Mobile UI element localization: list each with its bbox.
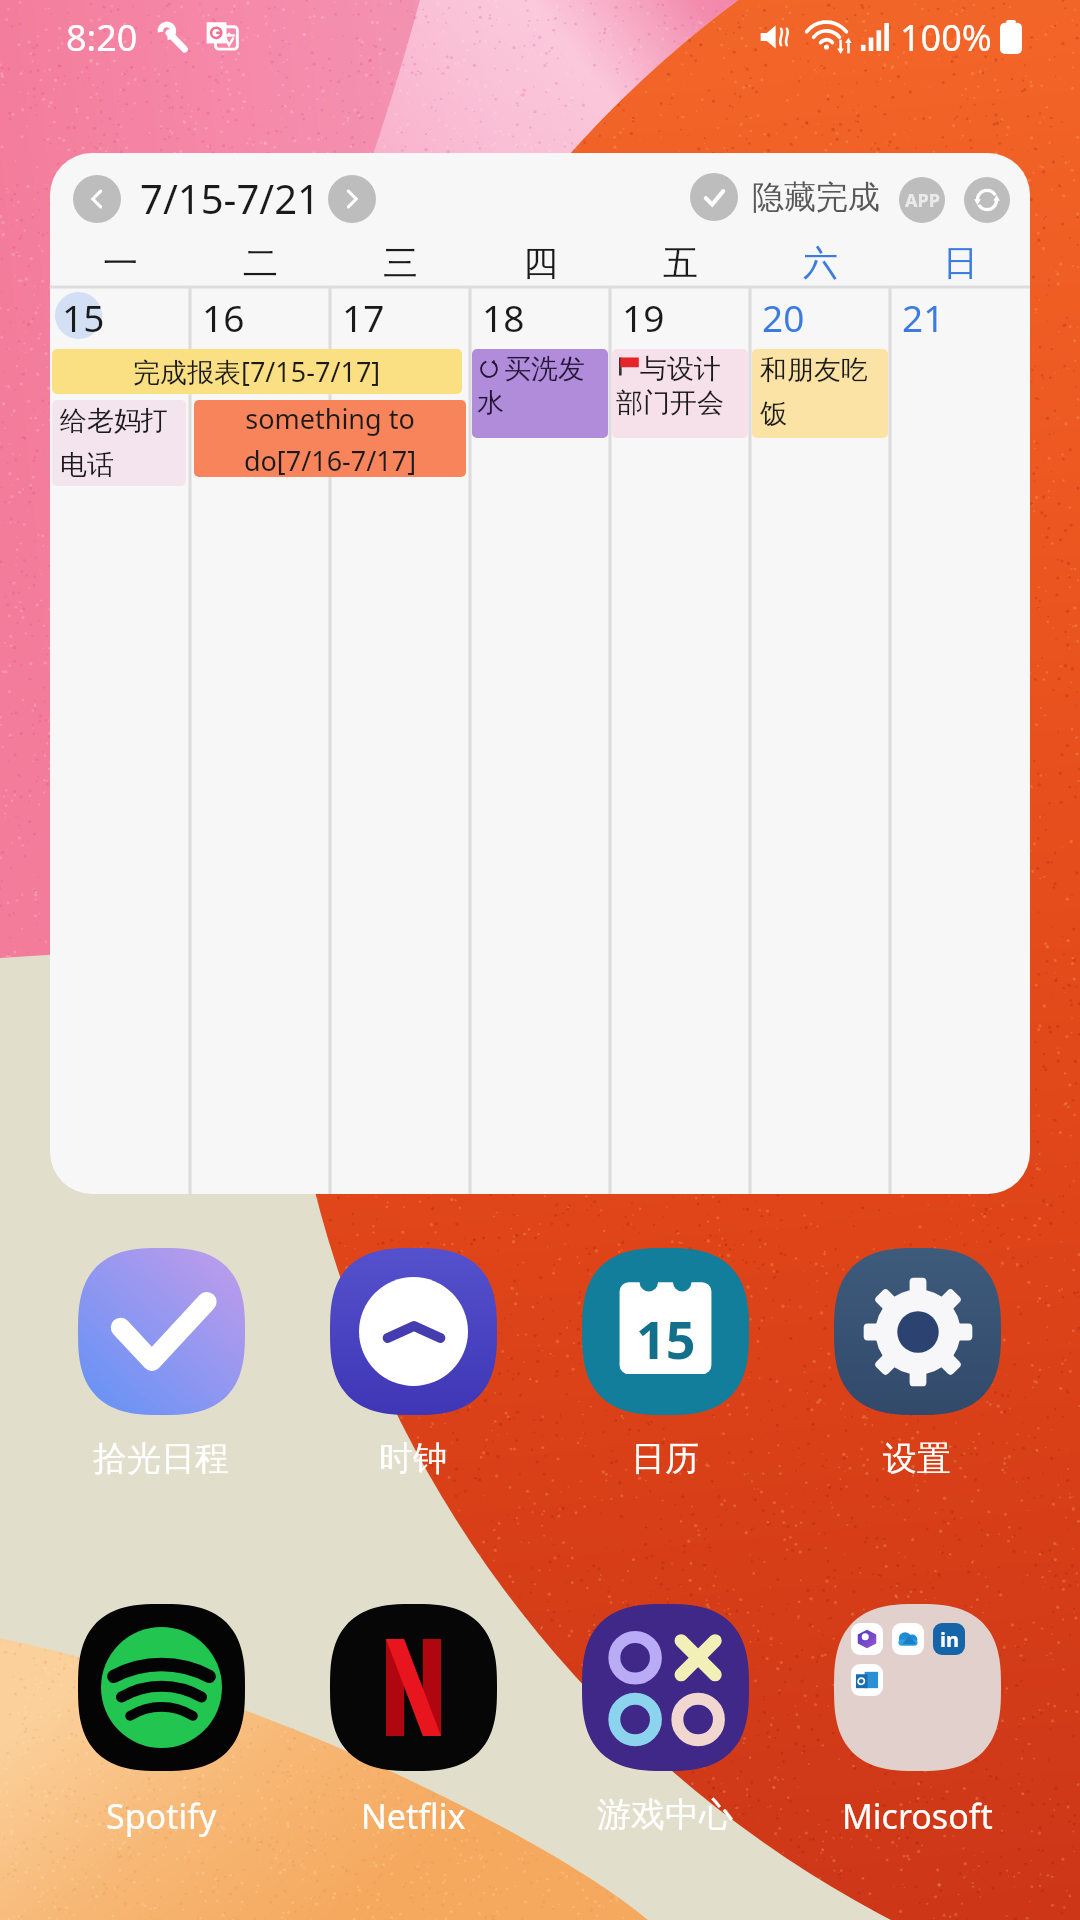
staticText: 水 [477, 386, 504, 420]
staticText: Netflix [361, 1793, 466, 1839]
staticText: 六 [803, 241, 838, 285]
button[interactable]: 拾光日程 [35, 1248, 287, 1480]
staticText: 一 [103, 241, 138, 285]
button[interactable]: 给老妈打电话 [52, 400, 186, 486]
staticText: 100% [900, 13, 992, 62]
staticText: 二 [243, 241, 278, 285]
staticText: 五 [663, 241, 698, 285]
staticText: 和朋友吃饭 [760, 353, 888, 431]
staticText: 游戏中心 [597, 1793, 733, 1836]
staticText: 完成报表[7/15-7/17] [133, 353, 381, 390]
staticText: APP [905, 188, 940, 213]
button[interactable]: Previous week [73, 175, 121, 223]
button[interactable]: Refresh [964, 177, 1010, 223]
button[interactable]: 时钟 [287, 1248, 539, 1480]
staticText: 三 [383, 241, 418, 285]
staticText: 18 [482, 292, 525, 342]
staticText: 7/15-7/21 [140, 171, 320, 225]
button[interactable]: App shortcut [899, 177, 945, 223]
button[interactable]: something to do[7/16-7/17] [194, 400, 466, 477]
staticText: 21 [902, 292, 945, 342]
staticText: 15 [62, 292, 105, 342]
staticText: 四 [523, 241, 558, 285]
staticText: 20 [762, 292, 805, 342]
button[interactable]: 15 [539, 1248, 791, 1480]
button[interactable]: 设置 [791, 1248, 1043, 1480]
staticText: 16 [202, 292, 245, 342]
staticText: 买洗发 [504, 352, 585, 386]
button[interactable]: Spotify [35, 1604, 287, 1839]
button[interactable]: in [791, 1604, 1043, 1839]
staticText: 日历 [631, 1437, 699, 1480]
button[interactable]: 完成报表[7/15-7/17] [52, 349, 462, 394]
staticText: 19 [622, 292, 665, 342]
staticText: 部门开会 [616, 386, 724, 420]
staticText: 时钟 [379, 1437, 447, 1480]
button[interactable]: Next week [328, 175, 376, 223]
staticText: 给老妈打电话 [60, 404, 186, 482]
staticText: 日 [943, 241, 978, 285]
staticText: 15 [636, 1303, 696, 1374]
staticText: 隐藏完成 [752, 177, 880, 217]
button[interactable]: Netflix [287, 1604, 539, 1839]
staticText: in [940, 1626, 959, 1653]
staticText: 8:20 [66, 13, 138, 62]
button[interactable]: 与设计 [612, 349, 748, 438]
button[interactable]: 隐藏完成 [690, 173, 880, 221]
staticText: Microsoft [842, 1793, 993, 1839]
staticText: something to do[7/16-7/17] [194, 400, 466, 477]
staticText: 拾光日程 [93, 1437, 229, 1480]
button[interactable]: 游戏中心 [539, 1604, 791, 1836]
staticText: Spotify [106, 1793, 217, 1839]
staticText: 设置 [883, 1437, 951, 1480]
button[interactable]: 买洗发 [472, 349, 608, 438]
button[interactable]: 和朋友吃饭 [752, 349, 888, 438]
staticText: 17 [342, 292, 385, 342]
staticText: 与设计 [640, 352, 721, 386]
